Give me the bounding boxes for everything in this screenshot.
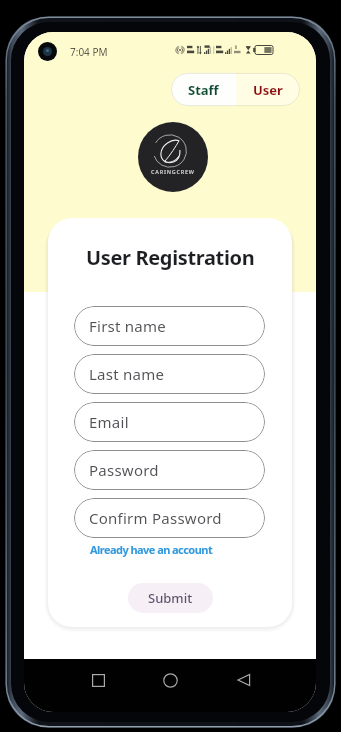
button[interactable]: Email (74, 402, 265, 442)
staticText: CARINGCREW (151, 168, 195, 175)
button[interactable]: User (236, 73, 300, 106)
staticText: User (253, 81, 283, 99)
staticText: User Registration (86, 244, 255, 271)
button[interactable]: Submit (128, 583, 213, 613)
button[interactable]: Password (74, 450, 265, 490)
staticText: Staff (188, 81, 219, 99)
staticText: Last name (89, 364, 165, 384)
staticText: Email (89, 412, 129, 432)
staticText: Already have an account (90, 542, 213, 557)
button[interactable]: Staff (171, 73, 236, 106)
button[interactable]: Last name (74, 354, 265, 394)
button[interactable]: Recents (78, 660, 118, 700)
button[interactable]: Back (224, 660, 264, 700)
staticText: Password (89, 460, 159, 480)
staticText: 7:04 PM (70, 45, 108, 59)
staticText: Submit (148, 589, 193, 607)
button[interactable]: Confirm Password (74, 498, 265, 538)
button[interactable]: Home (150, 660, 190, 700)
button[interactable]: Already have an account (84, 538, 219, 561)
button[interactable]: First name (74, 306, 265, 346)
staticText: First name (89, 316, 167, 336)
staticText: Confirm Password (89, 508, 222, 528)
